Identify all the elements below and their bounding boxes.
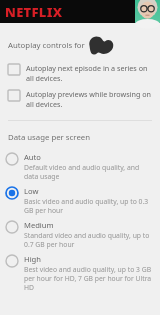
staticText: Autoplay next episode in a series on all… <box>26 63 154 83</box>
button[interactable]: Low <box>0 185 160 219</box>
staticText: Data usage per screen <box>8 132 91 143</box>
staticText: Auto <box>24 152 41 162</box>
button[interactable]: Autoplay previews while browsing on all … <box>0 89 160 109</box>
staticText: Autoplay controls for <box>8 40 85 51</box>
button[interactable]: Autoplay next episode in a series on all… <box>0 63 160 83</box>
button[interactable]: Auto <box>0 151 160 185</box>
staticText: Best video and audio quality, up to 3 GB… <box>24 265 154 292</box>
button[interactable]: High <box>0 253 160 296</box>
staticText: Standard video and audio quality, up to … <box>24 231 154 249</box>
button[interactable]: Profile <box>135 0 160 23</box>
staticText: Basic video and audio quality, up to 0.3… <box>24 197 154 215</box>
staticText: NETFLIX <box>5 3 63 21</box>
staticText: Medium <box>24 220 54 230</box>
staticText: Default video and audio quality, and dat… <box>24 163 154 181</box>
staticText: Low <box>24 186 39 196</box>
staticText: Autoplay previews while browsing on all … <box>26 89 154 109</box>
staticText: High <box>24 254 41 264</box>
button[interactable]: Medium <box>0 219 160 253</box>
